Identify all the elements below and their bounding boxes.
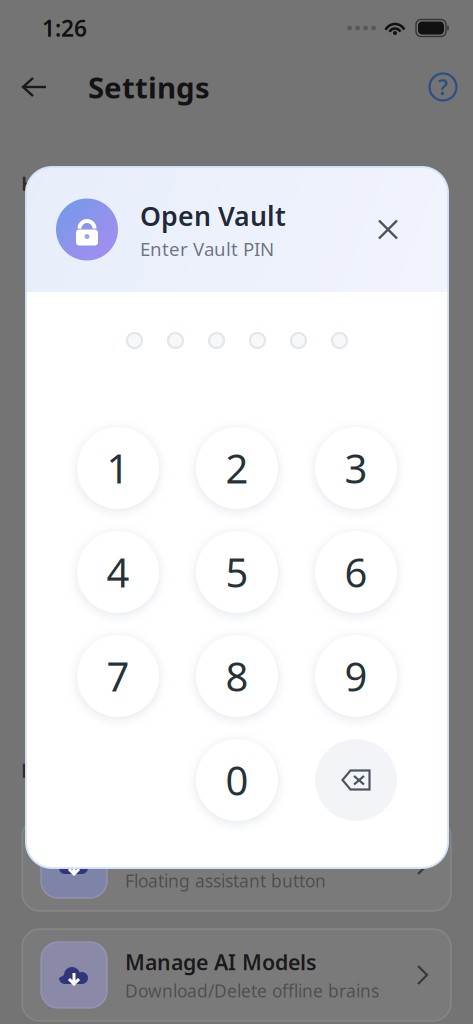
staticText: 2 — [225, 441, 248, 494]
staticText: 9 — [344, 649, 367, 702]
staticText: 1 — [106, 441, 129, 494]
staticText: 4 — [106, 545, 129, 598]
button[interactable]: Delete — [296, 728, 415, 832]
staticText: Data & Offline — [21, 757, 161, 783]
staticText: ? — [438, 73, 448, 101]
button[interactable]: Manage AI Models — [22, 929, 451, 1021]
button[interactable]: Smart Compose (FAB) — [22, 819, 451, 911]
button[interactable]: Close — [368, 209, 408, 249]
button[interactable]: 8 — [177, 624, 296, 728]
staticText: Hardware & Input — [21, 170, 197, 196]
staticText: Settings — [88, 67, 210, 106]
button[interactable]: 7 — [58, 624, 177, 728]
staticText: Enter Vault PIN — [140, 236, 274, 261]
staticText: 1:26 — [42, 13, 87, 43]
button[interactable]: Back — [18, 70, 52, 104]
button[interactable]: 4 — [58, 520, 177, 624]
staticText: Manage AI Models — [125, 948, 317, 976]
button[interactable]: 2 — [177, 416, 296, 520]
button[interactable]: 9 — [296, 624, 415, 728]
staticText: 3 — [344, 441, 367, 494]
staticText: 6 — [344, 545, 367, 598]
button[interactable]: 0 — [177, 728, 296, 832]
staticText: Open Vault — [140, 198, 286, 233]
staticText: Floating assistant button — [125, 869, 326, 892]
button[interactable]: 1 — [58, 416, 177, 520]
button[interactable]: Help — [425, 69, 461, 105]
button[interactable]: 3 — [296, 416, 415, 520]
staticText: Download/Delete offline brains — [125, 979, 379, 1002]
button[interactable]: 5 — [177, 520, 296, 624]
staticText: 0 — [225, 753, 248, 806]
staticText: 7 — [106, 649, 129, 702]
button[interactable]: 6 — [296, 520, 415, 624]
staticText: 8 — [225, 649, 248, 702]
staticText: 5 — [225, 545, 248, 598]
